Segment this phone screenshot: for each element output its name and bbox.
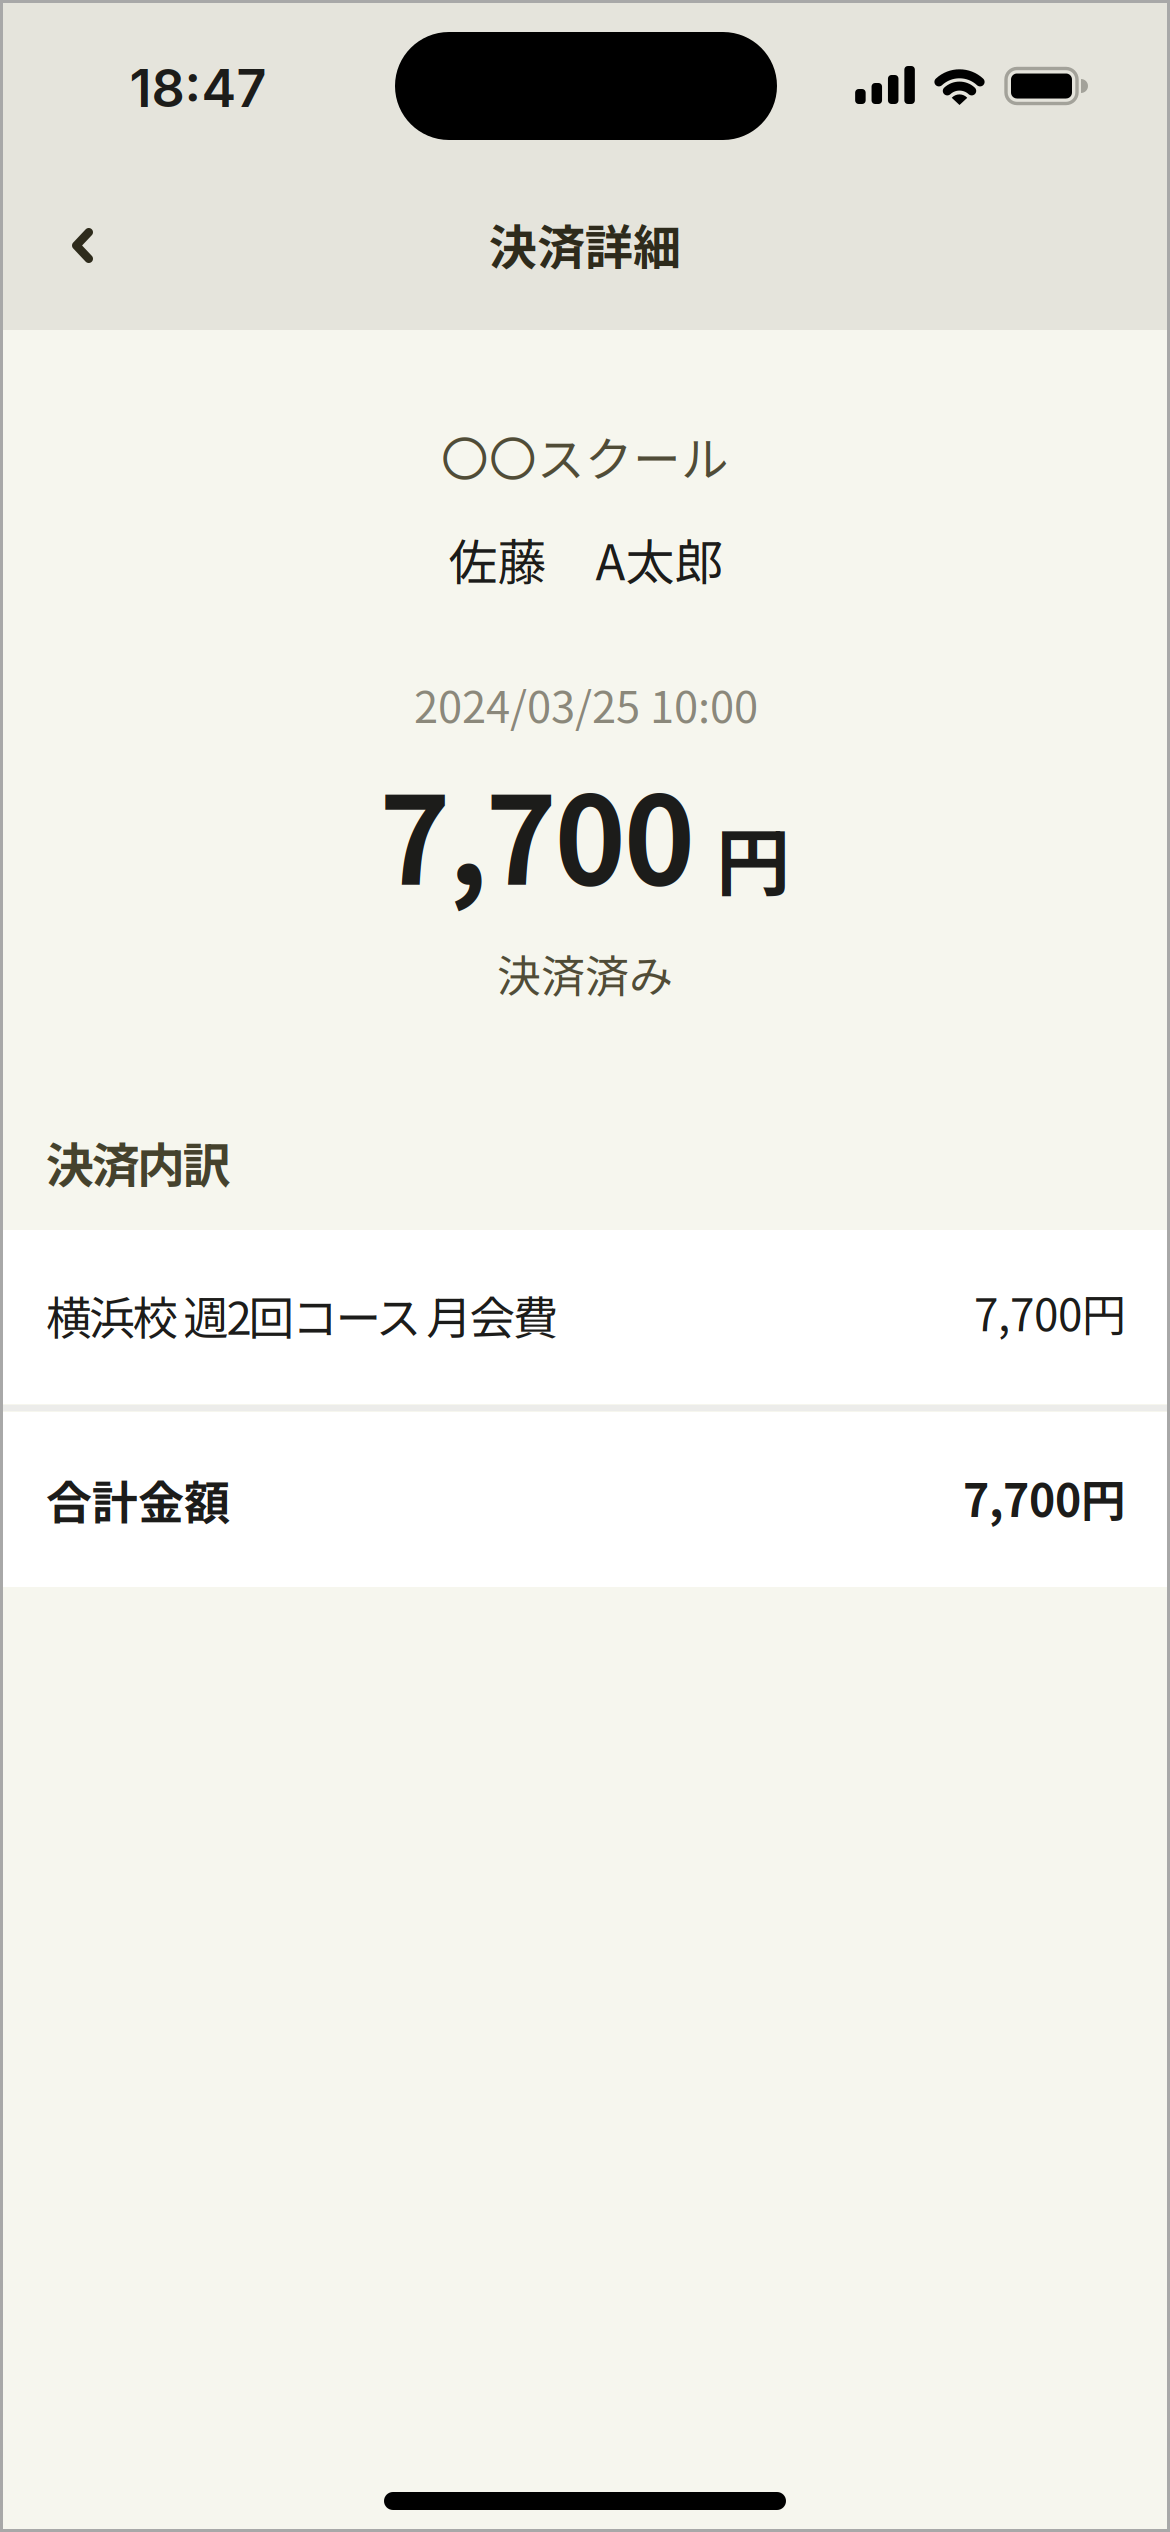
staticText: 7,700円 xyxy=(963,1465,1126,1530)
staticText: 決済詳細 xyxy=(489,209,681,279)
staticText: 18:47 xyxy=(129,56,266,119)
staticText: 7,700円 xyxy=(974,1280,1126,1344)
button[interactable]: 戻る xyxy=(39,200,129,290)
staticText: 佐藤 A太郎 xyxy=(448,523,723,594)
staticText: 横浜校 週2回コース 月会費 xyxy=(46,1282,559,1348)
staticText: 2024/03/25 10:00 xyxy=(414,672,758,735)
staticText: 決済済み xyxy=(497,941,673,1005)
staticText: 〇〇スクール xyxy=(441,422,729,490)
staticText: 円 xyxy=(716,803,790,911)
staticText: 合計金額 xyxy=(46,1466,230,1533)
staticText: 7,700 xyxy=(379,744,695,920)
staticText: 決済内訳 xyxy=(46,1127,230,1197)
